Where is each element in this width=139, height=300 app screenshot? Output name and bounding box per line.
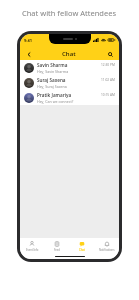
button[interactable]: Feed [44,238,69,254]
staticText: Suraj Saxena [37,77,66,83]
button[interactable]: Search [105,49,115,59]
staticText: 9:41 [24,38,32,43]
button[interactable]: Suraj Saxena [20,75,119,90]
button[interactable]: Chat [69,238,94,254]
button[interactable]: Notifications [94,238,119,254]
staticText: Hey, Can we connect? [37,99,74,104]
staticText: 10:15 AM [101,93,115,97]
staticText: Savin Sharma [37,62,68,68]
button[interactable]: Savin Sharma [20,60,119,75]
staticText: Event Info [26,248,39,252]
staticText: Chat [79,248,85,252]
staticText: Hey, Suraj Saxena [37,84,67,89]
staticText: Chat [62,50,76,58]
button[interactable]: Event Info [20,238,44,254]
staticText: 11:02 AM [101,78,115,82]
staticText: Pratik Jamariya [37,92,72,98]
staticText: Feed [54,248,60,252]
staticText: Hey, Savin Sharma [37,69,69,74]
staticText: Notifications [99,248,115,252]
staticText: Chat with fellow Attendees [22,8,117,18]
button[interactable]: Pratik Jamariya [20,90,119,105]
button[interactable]: Back [24,49,34,59]
staticText: 12:30 PM [101,63,115,67]
